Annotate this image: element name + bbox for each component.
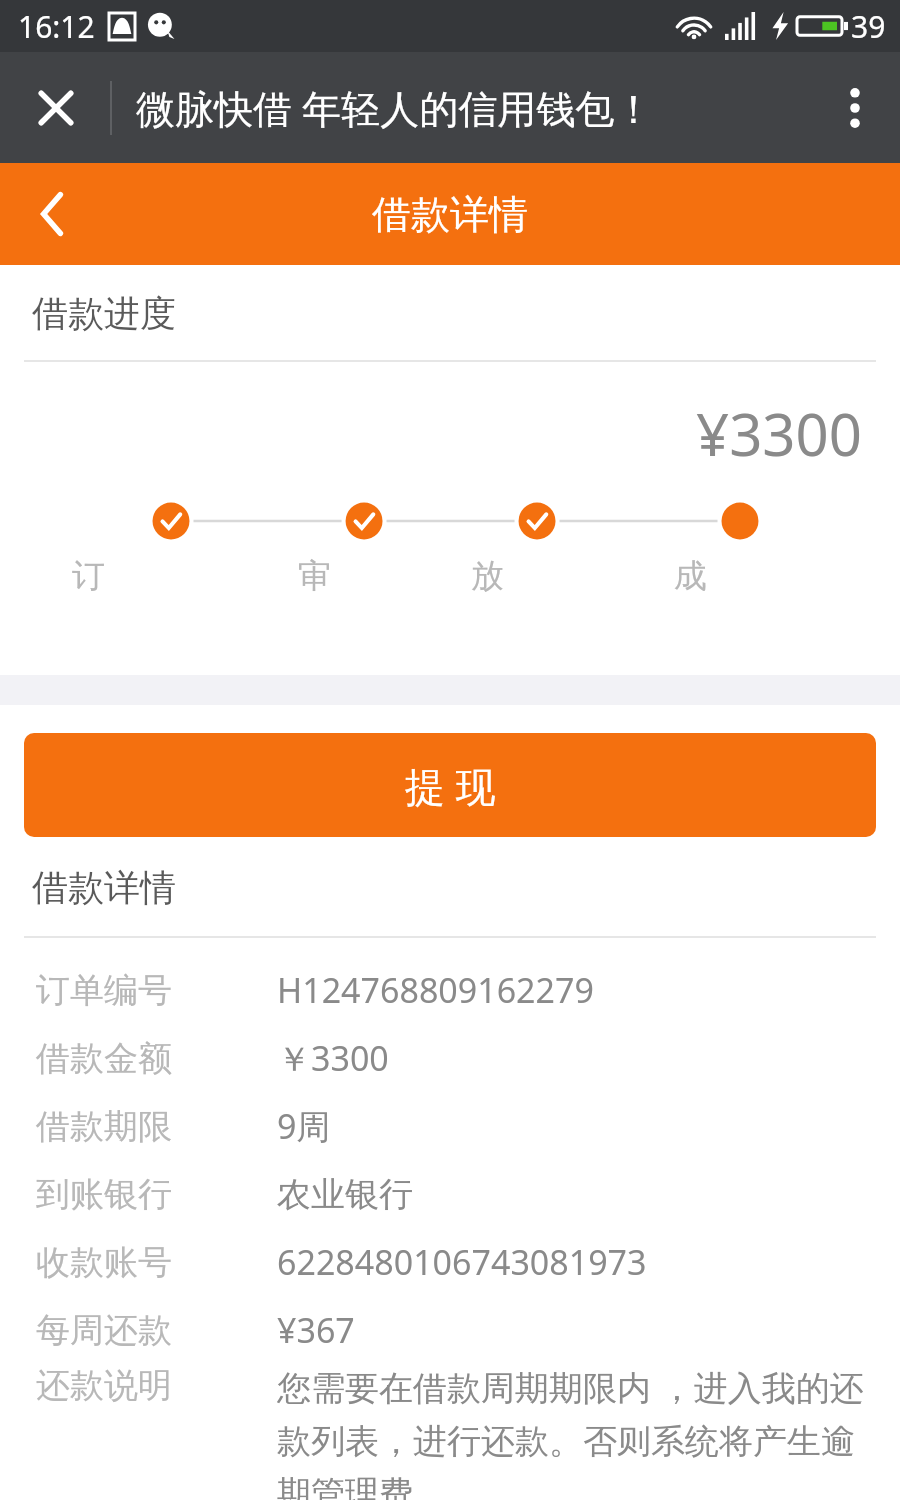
button[interactable]: More options <box>810 52 900 163</box>
staticText: 借款期限 <box>36 1105 277 1148</box>
staticText: 提 现 <box>405 758 496 813</box>
button[interactable]: 提 现 <box>24 733 876 837</box>
staticText: 每周还款 <box>36 1309 277 1352</box>
staticText: 还款说明 <box>36 1364 277 1407</box>
staticText: ¥3300 <box>696 394 862 473</box>
staticText: ￥3300 <box>277 1035 389 1081</box>
button[interactable]: Back <box>0 163 104 265</box>
staticText: 农业银行 <box>277 1173 413 1216</box>
staticText: ¥367 <box>277 1307 355 1353</box>
staticText: 借款详情 <box>372 190 528 239</box>
staticText: 6228480106743081973 <box>277 1239 647 1285</box>
staticText: 到账银行 <box>36 1173 277 1216</box>
staticText: 16:12 <box>18 6 95 47</box>
staticText: H124768809162279 <box>277 967 594 1013</box>
staticText: 9周 <box>277 1103 331 1149</box>
button[interactable]: Close <box>0 52 112 163</box>
staticText: 收款账号 <box>36 1241 277 1284</box>
staticText: 您需要在借款周期期限内 ，进入我的还款列表，进行还款。否则系统将产生逾期管理费 <box>277 1364 876 1500</box>
staticText: 微脉快借 年轻人的信用钱包！ <box>136 81 654 134</box>
staticText: 借款进度 <box>32 291 176 336</box>
staticText: 借款金额 <box>36 1037 277 1080</box>
staticText: 订单编号 <box>36 969 277 1012</box>
staticText: 39 <box>851 6 886 47</box>
staticText: 借款详情 <box>32 865 176 910</box>
